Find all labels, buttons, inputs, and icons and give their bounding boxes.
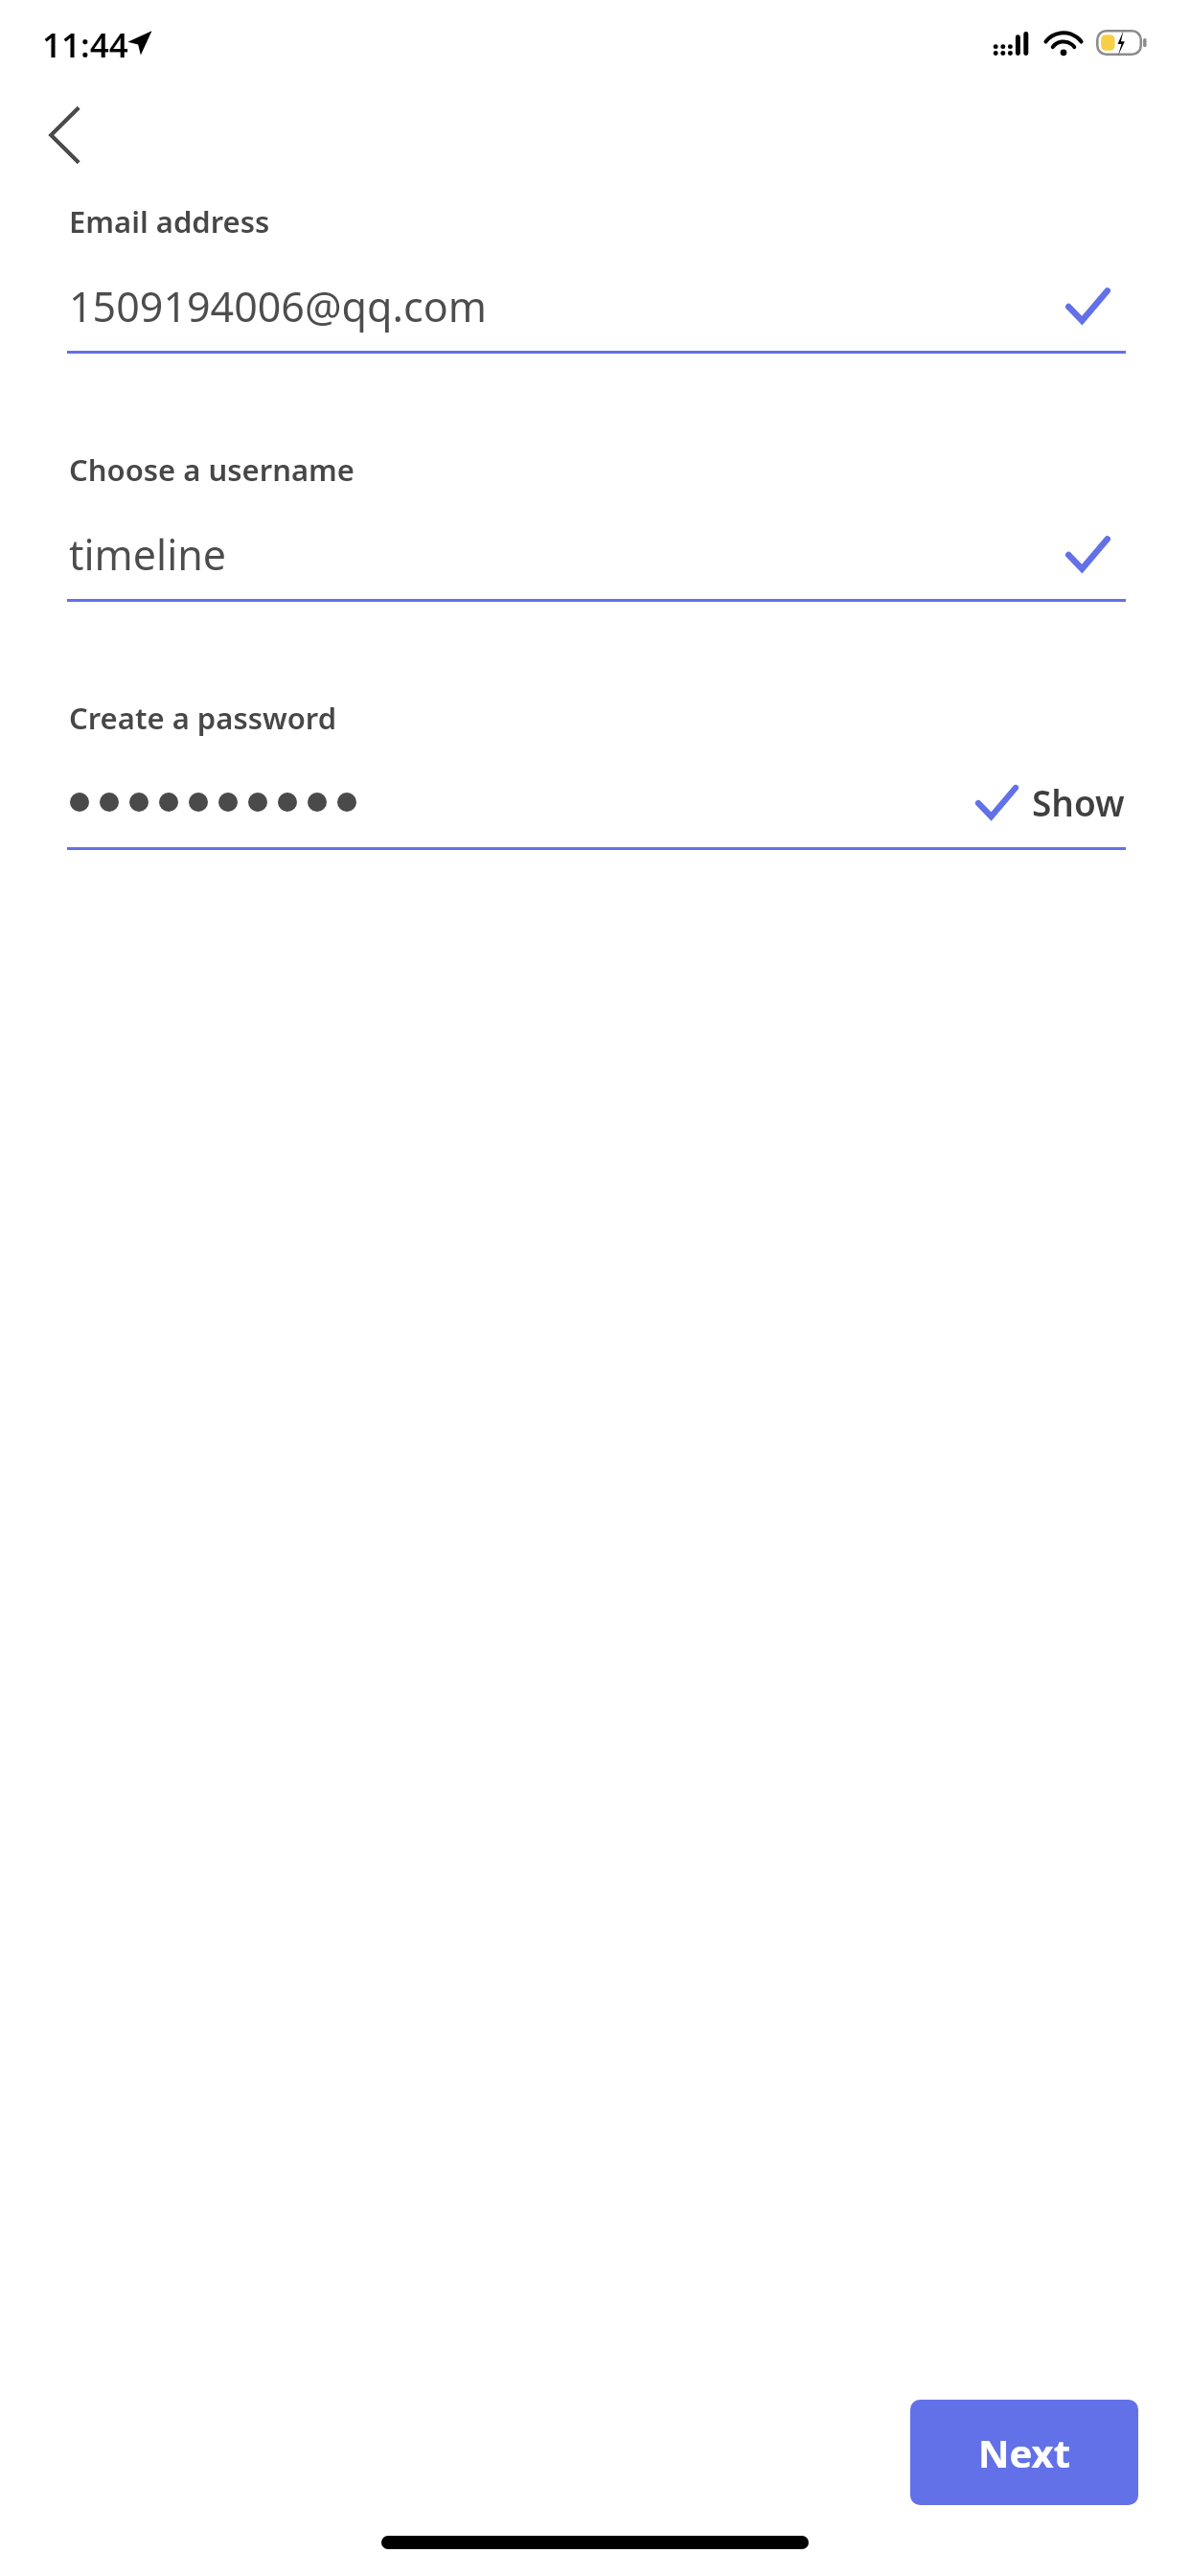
staticText: Create a password (69, 698, 337, 738)
staticText: Next (978, 2426, 1071, 2478)
button[interactable]: Email valid (1050, 268, 1125, 343)
staticText: Show (1032, 778, 1125, 826)
staticText: Email address (69, 201, 270, 241)
button[interactable]: Username available (1050, 517, 1125, 591)
staticText: 1509194006@qq.com (69, 278, 487, 334)
button[interactable]: Show (973, 778, 1125, 826)
button[interactable]: Back (21, 92, 107, 178)
staticText: 11:44 (42, 22, 128, 68)
staticText: Choose a username (69, 449, 355, 490)
button[interactable]: Next (910, 2400, 1138, 2505)
staticText: timeline (69, 526, 227, 583)
